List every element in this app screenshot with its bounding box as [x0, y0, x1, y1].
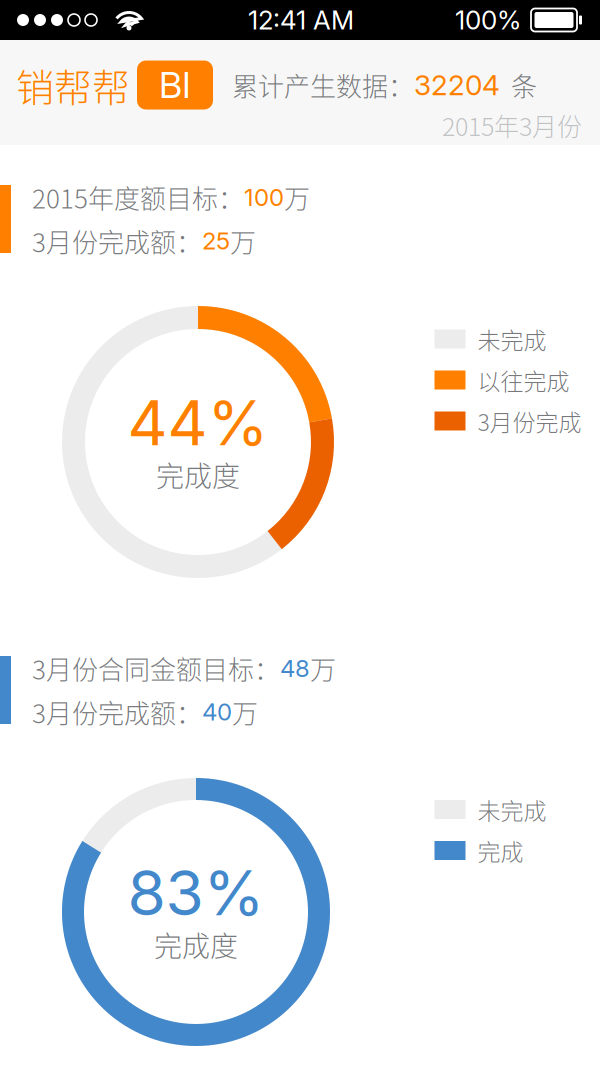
- staticText: 未完成: [477, 322, 546, 356]
- staticText: 40: [202, 697, 232, 726]
- staticText: BI: [159, 63, 191, 107]
- staticText: 万: [284, 178, 310, 216]
- staticText: 万: [232, 693, 258, 731]
- staticText: 3月份完成: [477, 404, 581, 438]
- staticText: 万: [230, 222, 256, 260]
- staticText: 完成: [477, 834, 523, 867]
- staticText: 完成度: [154, 924, 238, 965]
- staticText: 44%: [127, 385, 268, 460]
- staticText: 条: [511, 66, 537, 104]
- staticText: 销帮帮: [16, 57, 130, 112]
- staticText: 未完成: [477, 793, 546, 826]
- staticText: 3月份完成额：: [32, 222, 202, 260]
- staticText: 32204: [414, 68, 500, 102]
- staticText: 83%: [127, 855, 264, 930]
- staticText: 3月份完成额：: [32, 693, 202, 731]
- staticText: 以往完成: [477, 363, 569, 397]
- staticText: 12:41 AM: [248, 4, 354, 36]
- staticText: 25: [202, 226, 230, 255]
- staticText: 累计产生数据：: [232, 66, 414, 104]
- staticText: 100: [244, 183, 284, 212]
- staticText: 48: [280, 654, 310, 683]
- staticText: 完成度: [156, 454, 240, 495]
- staticText: 2015年度额目标：: [32, 178, 244, 216]
- staticText: 万: [310, 649, 336, 687]
- staticText: 3月份合同金额目标：: [32, 649, 280, 687]
- staticText: 2015年3月份: [442, 107, 582, 143]
- staticText: 100%: [455, 4, 521, 36]
